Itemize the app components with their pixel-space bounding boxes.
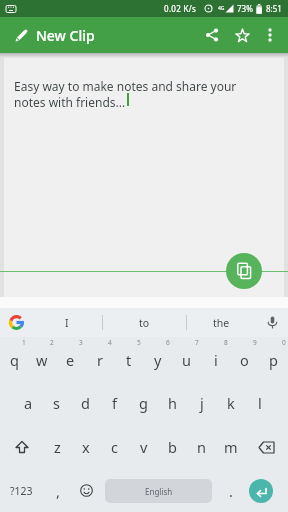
button[interactable]: j	[187, 381, 216, 425]
button[interactable]: l	[245, 381, 274, 425]
staticText: 7	[195, 338, 199, 347]
staticText: f	[112, 393, 117, 413]
staticText: y	[154, 350, 162, 370]
button[interactable]: s	[42, 381, 71, 425]
staticText: 8:51	[266, 3, 282, 14]
staticText: ?123	[10, 484, 33, 498]
button[interactable]: the	[187, 308, 256, 337]
button[interactable]	[226, 253, 262, 289]
button[interactable]: y	[143, 337, 172, 381]
staticText: z	[54, 437, 61, 457]
button[interactable]: k	[216, 381, 245, 425]
staticText: c	[111, 437, 118, 457]
button[interactable]	[245, 469, 288, 512]
button[interactable]: c	[100, 425, 129, 469]
button[interactable]: q	[0, 337, 28, 381]
button[interactable]: d	[71, 381, 100, 425]
staticText: New Clip	[36, 26, 95, 45]
staticText: 0	[282, 338, 286, 347]
staticText: English	[145, 486, 173, 497]
button[interactable]: z	[43, 425, 71, 469]
staticText: q	[10, 350, 19, 370]
staticText: p	[269, 350, 278, 370]
button[interactable]	[199, 22, 225, 48]
staticText: s	[53, 393, 60, 413]
button[interactable]: r	[85, 337, 114, 381]
button[interactable]: n	[187, 425, 216, 469]
staticText: r	[97, 350, 103, 370]
staticText: 5	[137, 338, 141, 347]
button[interactable]	[229, 22, 255, 48]
button[interactable]: h	[158, 381, 187, 425]
button[interactable]: .	[216, 469, 245, 512]
staticText: 2	[50, 338, 54, 347]
button[interactable]	[0, 425, 43, 469]
staticText: 9	[253, 338, 257, 347]
staticText: a	[24, 393, 33, 413]
staticText: u	[182, 350, 191, 370]
button[interactable]	[11, 25, 31, 45]
staticText: 4G	[218, 5, 225, 12]
staticText: 1	[22, 338, 26, 347]
staticText: 4	[108, 338, 112, 347]
staticText: Easy way to make notes and share your no…	[14, 78, 237, 110]
button[interactable]	[72, 469, 101, 512]
button[interactable]: i	[201, 337, 230, 381]
staticText: I	[65, 316, 69, 330]
button[interactable]	[0, 308, 32, 337]
staticText: to	[139, 316, 150, 330]
button[interactable]: p	[259, 337, 288, 381]
staticText: j	[200, 393, 204, 413]
button[interactable]: o	[230, 337, 259, 381]
staticText: 8	[224, 338, 228, 347]
staticText: b	[168, 437, 177, 457]
staticText: 0.02 K/s	[164, 3, 197, 14]
button[interactable]: x	[71, 425, 100, 469]
button[interactable]: g	[129, 381, 158, 425]
staticText: .	[229, 481, 233, 501]
staticText: v	[140, 437, 148, 457]
staticText: w	[36, 350, 48, 370]
button[interactable]: t	[114, 337, 143, 381]
button[interactable]	[245, 425, 288, 469]
staticText: e	[66, 350, 75, 370]
button[interactable]: English	[101, 469, 216, 512]
staticText: d	[81, 393, 90, 413]
button[interactable]: u	[172, 337, 201, 381]
button[interactable]: ?123	[0, 469, 43, 512]
staticText: n	[197, 437, 206, 457]
staticText: the	[213, 316, 230, 330]
staticText: 73%	[237, 3, 253, 14]
staticText: o	[240, 350, 249, 370]
staticText: t	[126, 350, 132, 370]
staticText: i	[214, 350, 218, 370]
staticText: k	[227, 393, 235, 413]
staticText: m	[224, 437, 238, 457]
button[interactable]: a	[14, 381, 42, 425]
button[interactable]: to	[103, 308, 186, 337]
button[interactable]: b	[158, 425, 187, 469]
staticText: x	[82, 437, 90, 457]
staticText: h	[168, 393, 177, 413]
staticText: ,	[56, 481, 60, 501]
staticText: g	[139, 393, 148, 413]
button[interactable]: e	[56, 337, 85, 381]
button[interactable]: m	[216, 425, 245, 469]
button[interactable]	[256, 308, 288, 337]
button[interactable]: Easy way to make notes and share your no…	[4, 58, 284, 297]
staticText: l	[258, 393, 262, 413]
button[interactable]: ,	[43, 469, 72, 512]
button[interactable]: I	[32, 308, 102, 337]
button[interactable]: w	[28, 337, 56, 381]
button[interactable]: v	[129, 425, 158, 469]
staticText: 6	[166, 338, 170, 347]
button[interactable]: f	[100, 381, 129, 425]
button[interactable]	[259, 24, 281, 46]
staticText: 3	[79, 338, 83, 347]
